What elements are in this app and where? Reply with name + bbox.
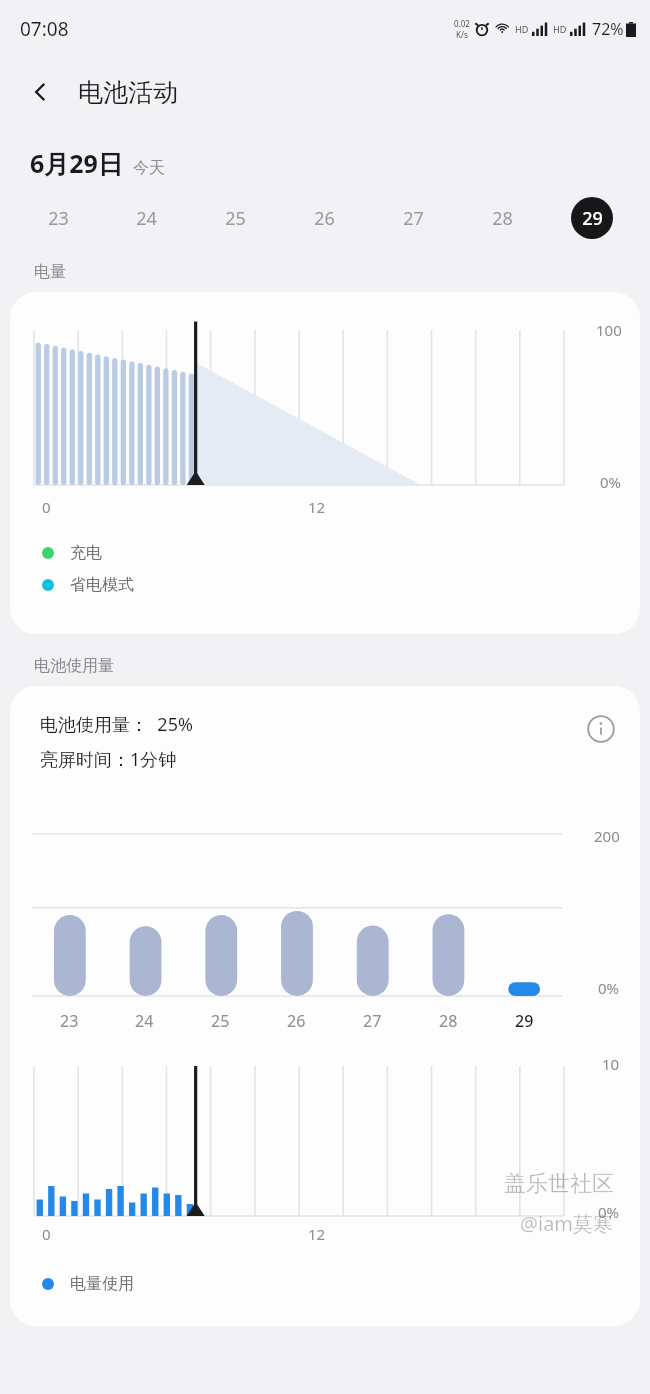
staticText: 29 <box>515 1010 534 1032</box>
staticText: 0% <box>598 1202 620 1222</box>
staticText: 电量使用 <box>70 1274 134 1294</box>
staticText: 100 <box>596 320 622 340</box>
staticText: 200 <box>594 826 620 846</box>
button[interactable]: 27 <box>369 194 458 242</box>
staticText: 今天 <box>133 158 165 178</box>
staticText: 亮屏时间：1分钟 <box>40 747 177 772</box>
staticText: 盖乐世社区 <box>504 1170 614 1198</box>
staticText: 电量 <box>34 262 66 282</box>
button[interactable]: 29 <box>547 194 636 242</box>
button[interactable]: 24 <box>102 194 191 242</box>
staticText: 0 <box>42 1224 51 1244</box>
staticText: @iam莫寒 <box>520 1210 614 1237</box>
staticText: 电池活动 <box>78 77 178 108</box>
button[interactable]: 28 <box>458 194 547 242</box>
staticText: 72% <box>592 18 624 40</box>
staticText: 10 <box>602 1054 620 1074</box>
staticText: 0.02 <box>454 18 470 29</box>
staticText: 充电 <box>70 543 102 563</box>
staticText: 07:08 <box>20 16 69 42</box>
staticText: 12 <box>308 1224 326 1244</box>
button[interactable]: Back <box>18 69 64 115</box>
staticText: 24 <box>136 206 157 231</box>
staticText: 6月29日 <box>30 146 123 180</box>
staticText: K/s <box>456 29 468 40</box>
staticText: 23 <box>48 206 69 231</box>
button[interactable]: 23 <box>14 194 102 242</box>
staticText: 28 <box>492 206 513 231</box>
staticText: 省电模式 <box>70 575 134 595</box>
staticText: HD <box>515 23 529 35</box>
staticText: 27 <box>363 1010 382 1032</box>
staticText: 25 <box>211 1010 230 1032</box>
staticText: 29 <box>582 206 603 231</box>
staticText: 0% <box>600 472 622 492</box>
staticText: 28 <box>439 1010 458 1032</box>
staticText: 27 <box>403 206 424 231</box>
staticText: 26 <box>287 1010 306 1032</box>
staticText: 25 <box>225 206 246 231</box>
button[interactable]: 100 <box>10 292 640 634</box>
staticText: HD <box>553 23 567 35</box>
staticText: 0 <box>42 497 51 517</box>
staticText: 电池使用量 <box>34 656 114 676</box>
staticText: 23 <box>60 1010 79 1032</box>
staticText: 电池使用量： 25% <box>40 712 193 737</box>
staticText: 12 <box>308 497 326 517</box>
button[interactable]: 25 <box>191 194 280 242</box>
staticText: 24 <box>135 1010 154 1032</box>
button[interactable]: Info <box>584 712 618 746</box>
staticText: 26 <box>314 206 335 231</box>
staticText: 0% <box>598 978 620 998</box>
button[interactable]: 26 <box>280 194 369 242</box>
